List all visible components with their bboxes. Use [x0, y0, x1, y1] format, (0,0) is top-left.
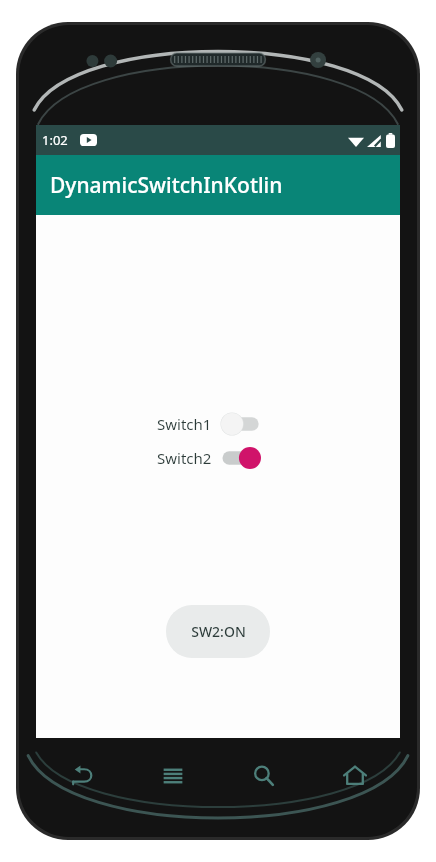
staticText: DynamicSwitchInKotlin [50, 171, 283, 200]
button[interactable]: Switch2 [157, 445, 262, 471]
button[interactable]: Switch1 [157, 411, 262, 437]
button[interactable]: SW2:ON [166, 605, 270, 658]
button[interactable]: Back [36, 752, 127, 800]
staticText: Switch2 [157, 448, 212, 468]
staticText: Switch1 [157, 414, 212, 434]
button[interactable]: Search [218, 752, 309, 800]
button[interactable]: Menu [127, 752, 218, 800]
button[interactable]: Home [309, 752, 400, 800]
staticText: SW2:ON [191, 622, 246, 641]
staticText: 1:02 [42, 131, 68, 149]
